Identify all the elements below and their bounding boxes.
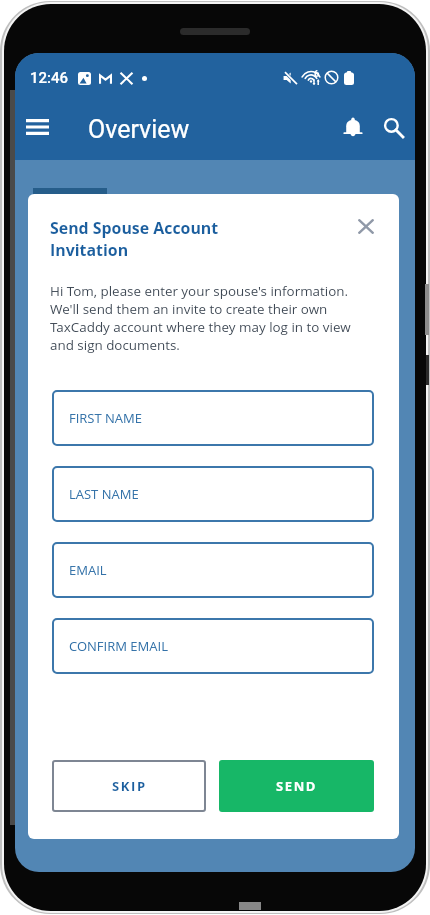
staticText: 12:46 xyxy=(30,69,69,87)
button[interactable]: Close xyxy=(349,209,383,243)
button[interactable]: SEND xyxy=(219,760,374,812)
button[interactable]: SKIP xyxy=(52,760,206,812)
button[interactable]: EMAIL xyxy=(52,542,374,598)
button[interactable]: LAST NAME xyxy=(52,466,374,522)
staticText: Hi Tom, please enter your spouse's infor… xyxy=(50,282,372,354)
button[interactable]: CONFIRM EMAIL xyxy=(52,618,374,674)
button[interactable]: FIRST NAME xyxy=(52,390,374,446)
button[interactable]: Menu xyxy=(15,104,60,150)
staticText: EMAIL xyxy=(69,561,107,579)
staticText: SKIP xyxy=(112,777,147,795)
staticText: FIRST NAME xyxy=(69,409,143,427)
staticText: Overview xyxy=(88,115,190,144)
button[interactable]: Search xyxy=(373,107,413,147)
staticText: SEND xyxy=(276,777,318,795)
button[interactable]: Notifications xyxy=(333,107,373,147)
staticText: LAST NAME xyxy=(69,485,139,503)
staticText: CONFIRM EMAIL xyxy=(69,637,168,655)
staticText: Send Spouse Account Invitation xyxy=(50,217,315,261)
